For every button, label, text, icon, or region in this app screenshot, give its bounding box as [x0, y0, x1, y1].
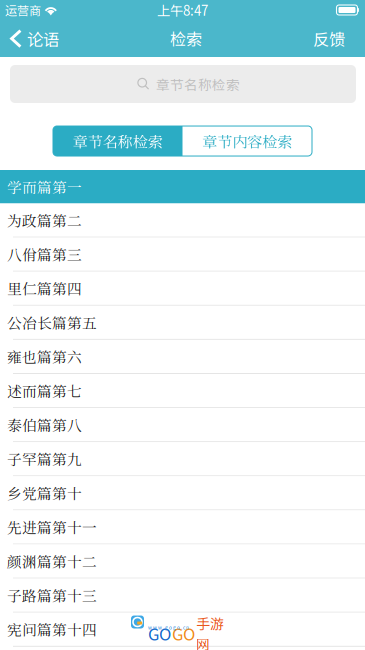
button[interactable]: 八佾篇第三 [0, 238, 365, 272]
button[interactable]: 子路篇第十三 [0, 579, 365, 613]
staticText: w w w . g o g o . c n [148, 624, 189, 631]
button[interactable]: 章节名称检索 [53, 126, 182, 156]
staticText: 手游网 [196, 613, 224, 650]
staticText: 乡党篇第十 [7, 482, 82, 503]
button[interactable]: 宪问篇第十四 [0, 613, 365, 647]
staticText: 宪问篇第十四 [7, 619, 97, 640]
button[interactable]: 为政篇第二 [0, 203, 365, 238]
button[interactable]: 公冶长篇第五 [0, 306, 365, 340]
staticText: 子罕篇第九 [7, 448, 82, 469]
button[interactable]: 述而篇第七 [0, 374, 365, 408]
staticText: 反馈 [313, 27, 345, 50]
staticText: GO [148, 621, 171, 645]
staticText: 论语 [27, 27, 59, 50]
button[interactable]: 雍也篇第六 [0, 340, 365, 374]
button[interactable]: 学而篇第一 [0, 170, 365, 203]
button[interactable]: 章节内容检索 [182, 126, 312, 156]
staticText: 章节名称检索 [156, 74, 240, 94]
button[interactable]: 乡党篇第十 [0, 476, 365, 510]
staticText: 雍也篇第六 [7, 346, 82, 367]
staticText: 公冶长篇第五 [7, 312, 97, 333]
staticText: 学而篇第一 [7, 176, 82, 197]
staticText: 八佾篇第三 [7, 244, 82, 265]
button[interactable]: 泰伯篇第八 [0, 408, 365, 442]
staticText: 子路篇第十三 [7, 585, 97, 606]
button[interactable]: 论语 [0, 20, 67, 56]
button[interactable]: 反馈 [305, 20, 365, 56]
button[interactable]: 里仁篇第四 [0, 272, 365, 306]
staticText: 章节内容检索 [202, 130, 292, 152]
staticText: 上午8:47 [157, 0, 208, 20]
button[interactable]: 子罕篇第九 [0, 442, 365, 476]
staticText: 运营商 [5, 1, 41, 19]
staticText: 述而篇第七 [7, 380, 82, 401]
staticText: 章节名称检索 [73, 130, 163, 152]
staticText: GO [172, 621, 195, 645]
staticText: 里仁篇第四 [7, 278, 82, 299]
staticText: 为政篇第二 [7, 209, 82, 231]
staticText: 先进篇第十一 [7, 516, 97, 537]
button[interactable]: 章节名称检索 [10, 65, 356, 103]
staticText: 颜渊篇第十二 [7, 550, 97, 572]
staticText: 检索 [170, 27, 202, 50]
staticText: 泰伯篇第八 [7, 414, 82, 435]
button[interactable]: 先进篇第十一 [0, 510, 365, 544]
button[interactable]: 颜渊篇第十二 [0, 544, 365, 579]
